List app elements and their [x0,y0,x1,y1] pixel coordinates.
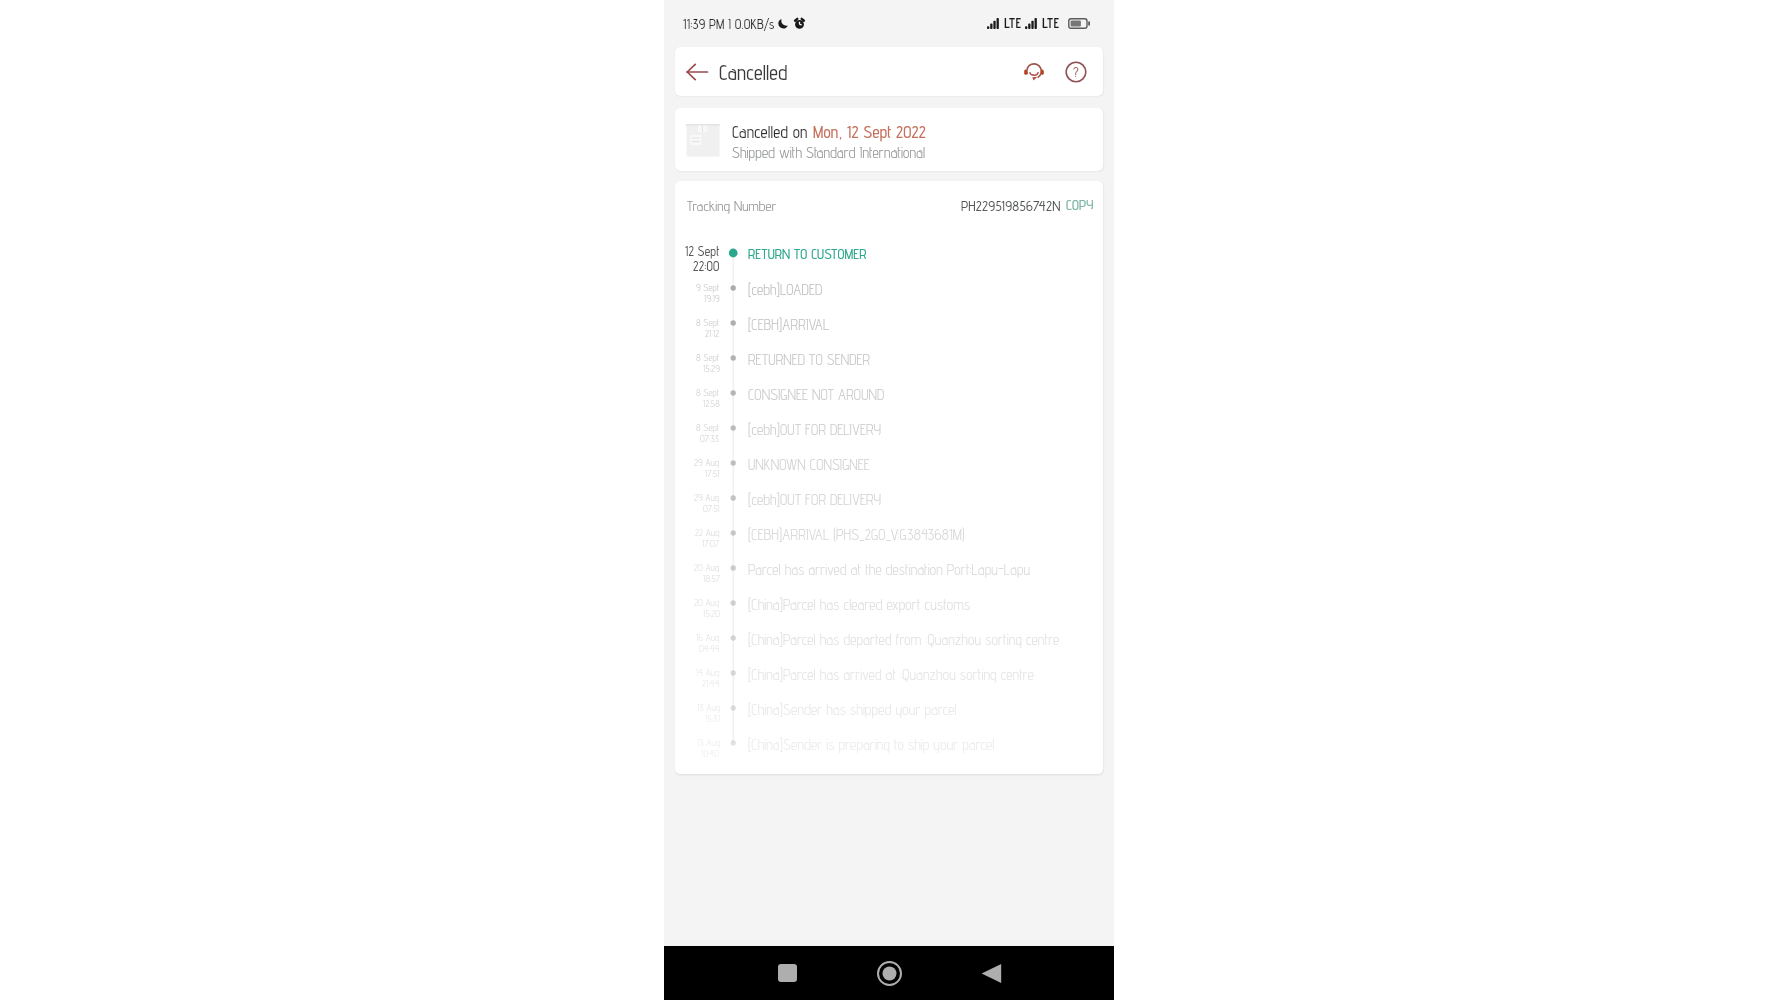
staticText: [China]Sender has shipped your parcel [748,701,957,718]
staticText: 16 Aug [696,632,720,643]
button[interactable]: Home [867,951,911,995]
button[interactable]: COPY [1066,197,1094,214]
staticText: ? [1073,64,1079,81]
staticText: 22 Aug [695,527,720,538]
staticText: [cebh]OUT FOR DELIVERY [748,421,882,438]
staticText: PH229519856742N [961,197,1061,214]
staticText: 15:31 [705,713,720,724]
staticText: [China]Parcel has departed from :Quanzho… [748,631,1060,648]
staticText: 13 Aug [697,702,720,713]
staticText: [cebh]LOADED [748,281,823,298]
staticText: LTE [1042,15,1060,32]
staticText: 15:20 [703,608,720,619]
staticText: Cancelled on [732,122,813,142]
staticText: 11:39 PM I 0.0KB/s [683,16,775,32]
staticText: [China]Sender is preparing to ship your … [748,736,995,753]
staticText: [CEBH]ARRIVAL [748,316,830,333]
staticText: 20 Aug [694,562,720,573]
staticText: Shipped with Standard International [732,144,926,162]
staticText: [cebh]OUT FOR DELIVERY [748,491,882,508]
staticText: 12 Sept [685,244,720,259]
staticText: 20 Aug [694,597,720,608]
button[interactable]: Help [1059,55,1093,89]
staticText: 07:33 [700,433,720,444]
staticText: 13 Aug [697,737,720,748]
staticText: Tracking Number [687,197,777,214]
staticText: 19:19 [704,293,720,304]
staticText: 15:29 [703,363,720,374]
staticText: CONSIGNEE NOT AROUND [748,386,885,403]
staticText: 8 Sept [696,422,720,433]
staticText: Parcel has arrived at the destination Po… [748,561,1031,578]
staticText: 8 Sept [696,317,720,328]
staticText: [China]Parcel has arrived at :Quanzhou s… [748,666,1034,683]
staticText: 29 Aug [694,492,720,503]
staticText: RETURN TO CUSTOMER [748,245,867,262]
staticText: RETURNED TO SENDER [748,351,871,368]
staticText: 10:40 [701,748,720,759]
staticText: 07:51 [703,503,720,514]
staticText: [China]Parcel has cleared export customs [748,596,971,613]
button[interactable]: Recent apps [765,951,809,995]
staticText: 8 Sept [696,387,720,398]
staticText: 29 Aug [694,457,720,468]
staticText: 12:58 [703,398,720,409]
staticText: 8 Sept [696,352,720,363]
button[interactable]: Back [681,56,713,88]
button[interactable]: Back [969,951,1013,995]
button[interactable]: Customer service [1017,55,1051,89]
staticText: 21:12 [705,328,720,339]
staticText: 17:07 [702,538,720,549]
staticText: 04:44 [699,643,720,654]
staticText: Cancelled [719,60,788,84]
staticText: 18:57 [703,573,720,584]
staticText: 14 Aug [696,667,720,678]
staticText: [CEBH]ARRIVAL (PHS_2GO_V:G3843681M) [748,526,965,543]
staticText: 17:51 [705,468,720,479]
staticText: 21:44 [702,678,720,689]
staticText: 22:00 [693,259,720,274]
staticText: 9 Sept [696,282,720,293]
staticText: Mon, 12 Sept 2022 [813,122,926,142]
staticText: COPY [1066,197,1094,214]
staticText: LTE [1004,15,1022,32]
staticText: UNKNOWN CONSIGNEE [748,456,870,473]
